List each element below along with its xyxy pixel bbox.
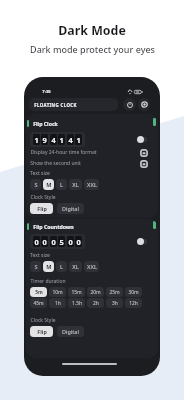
staticText: 1.5h [72, 300, 82, 307]
staticText: 10m [52, 289, 63, 296]
staticText: XL [72, 181, 79, 189]
staticText: 0 [76, 237, 81, 247]
button[interactable]: Settings [138, 98, 150, 111]
staticText: XXL [87, 263, 97, 271]
staticText: 12h [129, 300, 138, 307]
button[interactable]: 1.5h [68, 298, 85, 308]
staticText: 0 [68, 237, 73, 247]
staticText: Clock Style [30, 194, 56, 201]
staticText: L [60, 263, 63, 271]
staticText: XXL [87, 181, 97, 189]
staticText: 20m [90, 289, 101, 296]
staticText: 2h [93, 300, 99, 307]
staticText: XL [72, 263, 79, 271]
button[interactable]: Checkbox [140, 160, 148, 168]
button[interactable]: Show the second unit [30, 158, 148, 169]
staticText: 30m [128, 289, 139, 296]
button[interactable]: Digital [57, 203, 84, 214]
staticText: 1 [34, 135, 39, 145]
button[interactable]: 20m [87, 287, 104, 297]
button[interactable]: Toggle [137, 136, 147, 143]
button[interactable]: Digital [57, 326, 84, 337]
staticText: M [46, 263, 52, 271]
staticText: 7:35 [42, 89, 51, 95]
staticText: Show the second unit [30, 160, 81, 167]
staticText: 25m [109, 289, 120, 296]
staticText: 1 [76, 135, 81, 145]
staticText: 1h [55, 300, 61, 307]
button[interactable]: L [56, 261, 67, 272]
button[interactable]: XXL [84, 261, 99, 272]
staticText: S [34, 181, 38, 189]
button[interactable]: 2h [87, 298, 104, 308]
staticText: Text size [30, 170, 50, 177]
staticText: Digital [62, 205, 79, 212]
button[interactable]: 25m [106, 287, 123, 297]
staticText: 4 [51, 135, 56, 145]
button[interactable]: M [43, 261, 54, 272]
button[interactable]: XL [69, 179, 82, 190]
button[interactable]: Display 24-hour time format [30, 147, 148, 158]
staticText: M [46, 181, 52, 189]
staticText: Dark mode protect your eyes [30, 43, 155, 55]
staticText: 5 [59, 237, 64, 247]
staticText: FLOATING CLOCK [34, 102, 77, 108]
staticText: 9 [42, 135, 47, 145]
staticText: 3h [112, 300, 118, 307]
button[interactable]: XXL [84, 179, 99, 190]
button[interactable]: Toggle [137, 238, 147, 245]
staticText: Text size [30, 252, 50, 259]
button[interactable]: Timer [123, 98, 136, 111]
staticText: 4 [68, 135, 73, 145]
staticText: 15m [71, 289, 82, 296]
staticText: 0 [51, 237, 56, 247]
button[interactable]: 3h [106, 298, 123, 308]
staticText: Clock Style [30, 317, 56, 324]
staticText: S [34, 263, 38, 271]
button[interactable]: S [30, 261, 41, 272]
staticText: Digital [62, 328, 79, 335]
button[interactable]: Flip [30, 203, 53, 214]
button[interactable]: M [43, 179, 54, 190]
button[interactable]: 15m [68, 287, 85, 297]
staticText: Flip [37, 205, 47, 212]
staticText: 0 [42, 237, 47, 247]
staticText: L [60, 181, 63, 189]
staticText: Flip Clock [33, 120, 58, 127]
staticText: Flip Countdown [33, 223, 74, 230]
button[interactable]: 45m [30, 298, 47, 308]
staticText: 1 [59, 135, 64, 145]
staticText: Display 24-hour time format [30, 149, 97, 156]
button[interactable]: 1h [49, 298, 66, 308]
button[interactable]: Checkbox [140, 149, 148, 157]
button[interactable]: S [30, 179, 41, 190]
button[interactable]: FLOATING CLOCK [29, 98, 118, 111]
button[interactable]: XL [69, 261, 82, 272]
staticText: Timer duration [30, 278, 66, 285]
button[interactable]: Flip [30, 326, 53, 337]
staticText: 0 [34, 237, 39, 247]
staticText: 5m [35, 289, 43, 296]
button[interactable]: 12h [125, 298, 142, 308]
staticText: Dark Mode [58, 22, 126, 39]
button[interactable]: L [56, 179, 67, 190]
staticText: Flip [37, 328, 47, 335]
button[interactable]: 30m [125, 287, 142, 297]
button[interactable]: 5m [30, 287, 47, 297]
staticText: 45m [33, 300, 44, 307]
button[interactable]: 10m [49, 287, 66, 297]
